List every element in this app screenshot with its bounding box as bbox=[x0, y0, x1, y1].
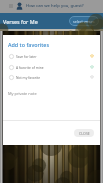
button[interactable]: select verses bbox=[69, 16, 99, 26]
button[interactable]: Not my favorite bbox=[3, 72, 100, 82]
staticText: Verses for Me bbox=[3, 18, 38, 25]
staticText: Not my favorite bbox=[16, 75, 41, 79]
staticText: My private note bbox=[8, 91, 37, 96]
staticText: Save for later bbox=[16, 54, 37, 58]
staticText: How can we help you, guest? bbox=[26, 3, 84, 9]
staticText: A favorite of mine bbox=[16, 65, 44, 69]
button[interactable]: A favorite of mine bbox=[3, 62, 100, 72]
staticText: CLOSE bbox=[79, 131, 90, 136]
button[interactable]: Save for later bbox=[3, 51, 100, 61]
staticText: select verses bbox=[73, 19, 95, 24]
staticText: Add to favorites bbox=[8, 41, 50, 48]
button[interactable]: Account bbox=[16, 2, 23, 11]
button[interactable]: CLOSE bbox=[74, 129, 94, 137]
